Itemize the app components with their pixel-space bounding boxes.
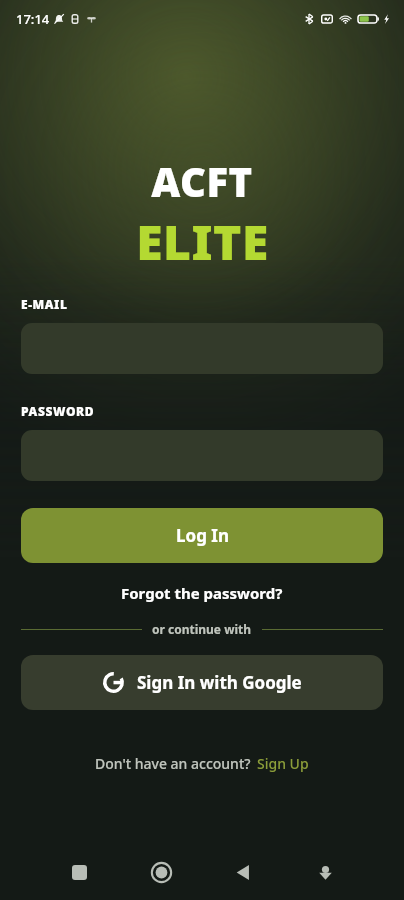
staticText: PASSWORD bbox=[21, 403, 95, 419]
staticText: Don't have an account? bbox=[95, 754, 251, 773]
staticText: Forgot the password? bbox=[121, 583, 283, 603]
staticText: ELITE bbox=[136, 209, 269, 274]
button[interactable]: Sign Up bbox=[257, 754, 309, 773]
staticText: Log In bbox=[176, 524, 229, 547]
staticText: ACFT bbox=[151, 154, 253, 208]
staticText: 17:14 bbox=[16, 10, 50, 28]
staticText: Sign In with Google bbox=[137, 671, 302, 694]
button[interactable]: Back bbox=[224, 853, 262, 891]
staticText: E-MAIL bbox=[21, 296, 68, 312]
button[interactable]: Forgot the password? bbox=[21, 580, 383, 606]
button[interactable]: Sign In with Google bbox=[21, 655, 383, 710]
staticText: Sign Up bbox=[257, 754, 309, 773]
staticText: or continue with bbox=[152, 621, 252, 637]
button[interactable]: Log In bbox=[21, 508, 383, 563]
button[interactable]: Download bbox=[306, 853, 344, 891]
button[interactable]: Home bbox=[142, 853, 180, 891]
button[interactable]: Recent apps bbox=[60, 853, 98, 891]
